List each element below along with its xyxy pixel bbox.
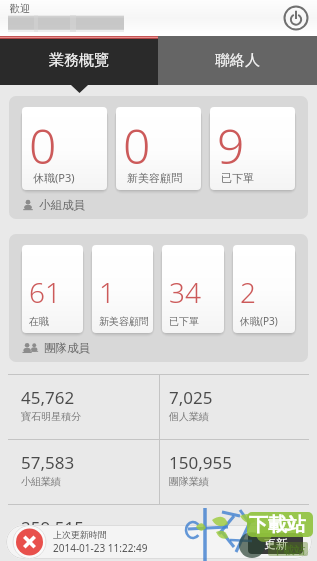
button[interactable]: 9 — [210, 107, 295, 190]
staticText: 聯絡人 — [215, 51, 260, 70]
staticText: 57,583 — [21, 451, 75, 474]
staticText: 休職(P3) — [240, 314, 278, 328]
staticText: 0 — [123, 113, 151, 178]
button[interactable]: 45,762 — [0, 375, 159, 439]
staticText: 45,762 — [21, 386, 75, 409]
button[interactable]: 57,583 — [0, 440, 159, 504]
staticText: 34 — [169, 273, 201, 311]
staticText: 2014-01-23 11:22:49 — [53, 541, 148, 555]
staticText: 0 — [29, 113, 57, 178]
staticText: 2 — [240, 273, 256, 311]
staticText: 寶石明星積分 — [21, 410, 81, 423]
button[interactable]: 34 — [162, 245, 224, 333]
button[interactable]: 150,955 — [159, 440, 317, 504]
staticText: 已下單 — [221, 171, 254, 185]
button[interactable]: 1 — [92, 245, 153, 333]
staticText: 新美容顧問 — [99, 315, 149, 328]
staticText: 已下單 — [169, 315, 199, 328]
button[interactable]: 0 — [22, 107, 107, 190]
staticText: 下載站 — [249, 513, 306, 537]
staticText: 9 — [217, 113, 245, 178]
staticText: 新美容顧問 — [127, 171, 182, 185]
staticText: 休職(P3) — [33, 170, 75, 185]
staticText: 小組成員 — [39, 198, 85, 212]
staticText: 更新 — [264, 536, 288, 551]
staticText: 7,025 — [169, 386, 213, 409]
button[interactable]: 0 — [116, 107, 201, 190]
staticText: 個人業績 — [169, 410, 209, 423]
button[interactable]: 業務概覽 — [0, 36, 158, 85]
button[interactable]: 259,515 — [0, 505, 159, 561]
staticText: 1 — [99, 273, 115, 311]
button[interactable]: 更新 — [248, 533, 303, 554]
button[interactable]: 0 — [9, 96, 308, 219]
staticText: 在職 — [29, 315, 49, 328]
button[interactable]: 2 — [233, 245, 295, 333]
staticText: 小組業績 — [21, 475, 61, 488]
button[interactable]: Close — [11, 525, 48, 559]
staticText: 150,955 — [169, 451, 232, 474]
button[interactable]: Logout — [283, 5, 309, 31]
staticText: 歡迎 — [10, 2, 30, 15]
button[interactable] — [159, 505, 317, 561]
staticText: 61 — [29, 273, 61, 311]
staticText: 259,515 — [21, 516, 84, 539]
button[interactable]: 61 — [22, 245, 83, 333]
staticText: 團隊成員 — [44, 341, 90, 355]
staticText: 團隊業績 — [169, 475, 209, 488]
staticText: 上次更新時間 — [53, 529, 107, 540]
button[interactable]: 聯絡人 — [158, 36, 317, 85]
staticText: 下載站 — [272, 543, 305, 557]
staticText: 業務概覽 — [49, 51, 109, 70]
button[interactable]: 7,025 — [159, 375, 317, 439]
button[interactable]: 61 — [9, 234, 308, 362]
